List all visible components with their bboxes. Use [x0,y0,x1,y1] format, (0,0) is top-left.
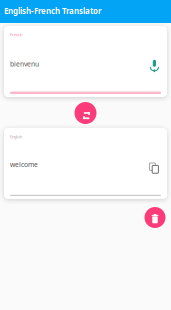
staticText: French [10,32,22,37]
staticText: English-French Translator [4,6,102,16]
staticText: bienvenu [10,59,39,68]
button[interactable]: Voice input [150,57,167,70]
button[interactable]: Clear text [144,207,165,228]
button[interactable]: Copy translation [148,159,167,169]
staticText: English [10,134,22,139]
staticText: welcome [10,160,38,169]
button[interactable]: Swap languages [74,102,96,124]
